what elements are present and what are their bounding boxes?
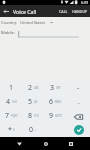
button[interactable]: Backspace: [67, 109, 90, 123]
button[interactable]: CALL: [57, 6, 70, 17]
button[interactable]: United States: [20, 20, 53, 25]
button[interactable]: 3: [44, 81, 67, 95]
button[interactable]: Call: [74, 125, 84, 135]
staticText: GHI: [12, 100, 17, 104]
staticText: 1: [9, 83, 14, 93]
staticText: PQRS: [11, 114, 18, 118]
button[interactable]: *: [0, 123, 22, 137]
staticText: JKL: [34, 100, 38, 104]
button[interactable]: .: [67, 95, 90, 109]
staticText: *: [8, 125, 12, 135]
button[interactable]: 1: [0, 81, 22, 95]
staticText: WXYZ: [55, 114, 62, 118]
button[interactable]: 7: [0, 109, 22, 123]
staticText: 8: [28, 111, 33, 121]
staticText: ABC: [34, 86, 39, 90]
staticText: 9: [49, 111, 54, 121]
button[interactable]: Back: [0, 5, 13, 17]
staticText: .: [78, 97, 80, 107]
button[interactable]: 0: [22, 123, 44, 137]
button[interactable]: Recents: [64, 137, 77, 150]
button[interactable]: 4: [0, 95, 22, 109]
staticText: -: [77, 83, 80, 93]
staticText: 7: [5, 111, 10, 121]
button[interactable]: 9: [44, 109, 67, 123]
button[interactable]: [17, 30, 90, 39]
staticText: 2: [28, 83, 33, 93]
staticText: 6:09: [81, 0, 89, 5]
staticText: Mobile:: [1, 30, 15, 35]
staticText: Country:: [1, 20, 18, 25]
staticText: 5: [28, 97, 33, 107]
staticText: +: [35, 128, 37, 132]
button[interactable]: -: [67, 81, 90, 95]
staticText: DEF: [56, 86, 61, 90]
staticText: 4: [6, 97, 11, 107]
button[interactable]: 8: [22, 109, 44, 123]
staticText: 6: [49, 97, 54, 107]
button[interactable]: 6: [44, 95, 67, 109]
staticText: United States: [20, 20, 46, 25]
staticText: 3: [50, 83, 55, 93]
button[interactable]: HANGUP: [70, 6, 90, 17]
button[interactable]: Call: [67, 123, 90, 137]
button[interactable]: 5: [22, 95, 44, 109]
staticText: MNO: [55, 100, 62, 104]
staticText: TUV: [34, 114, 39, 118]
button[interactable]: Back: [13, 137, 26, 150]
button[interactable]: Home: [39, 137, 52, 150]
other: Backspace: [74, 112, 83, 121]
staticText: #: [13, 128, 15, 132]
button[interactable]: 2: [22, 81, 44, 95]
staticText: 0: [29, 125, 34, 135]
staticText: Voice Call: [13, 8, 37, 15]
